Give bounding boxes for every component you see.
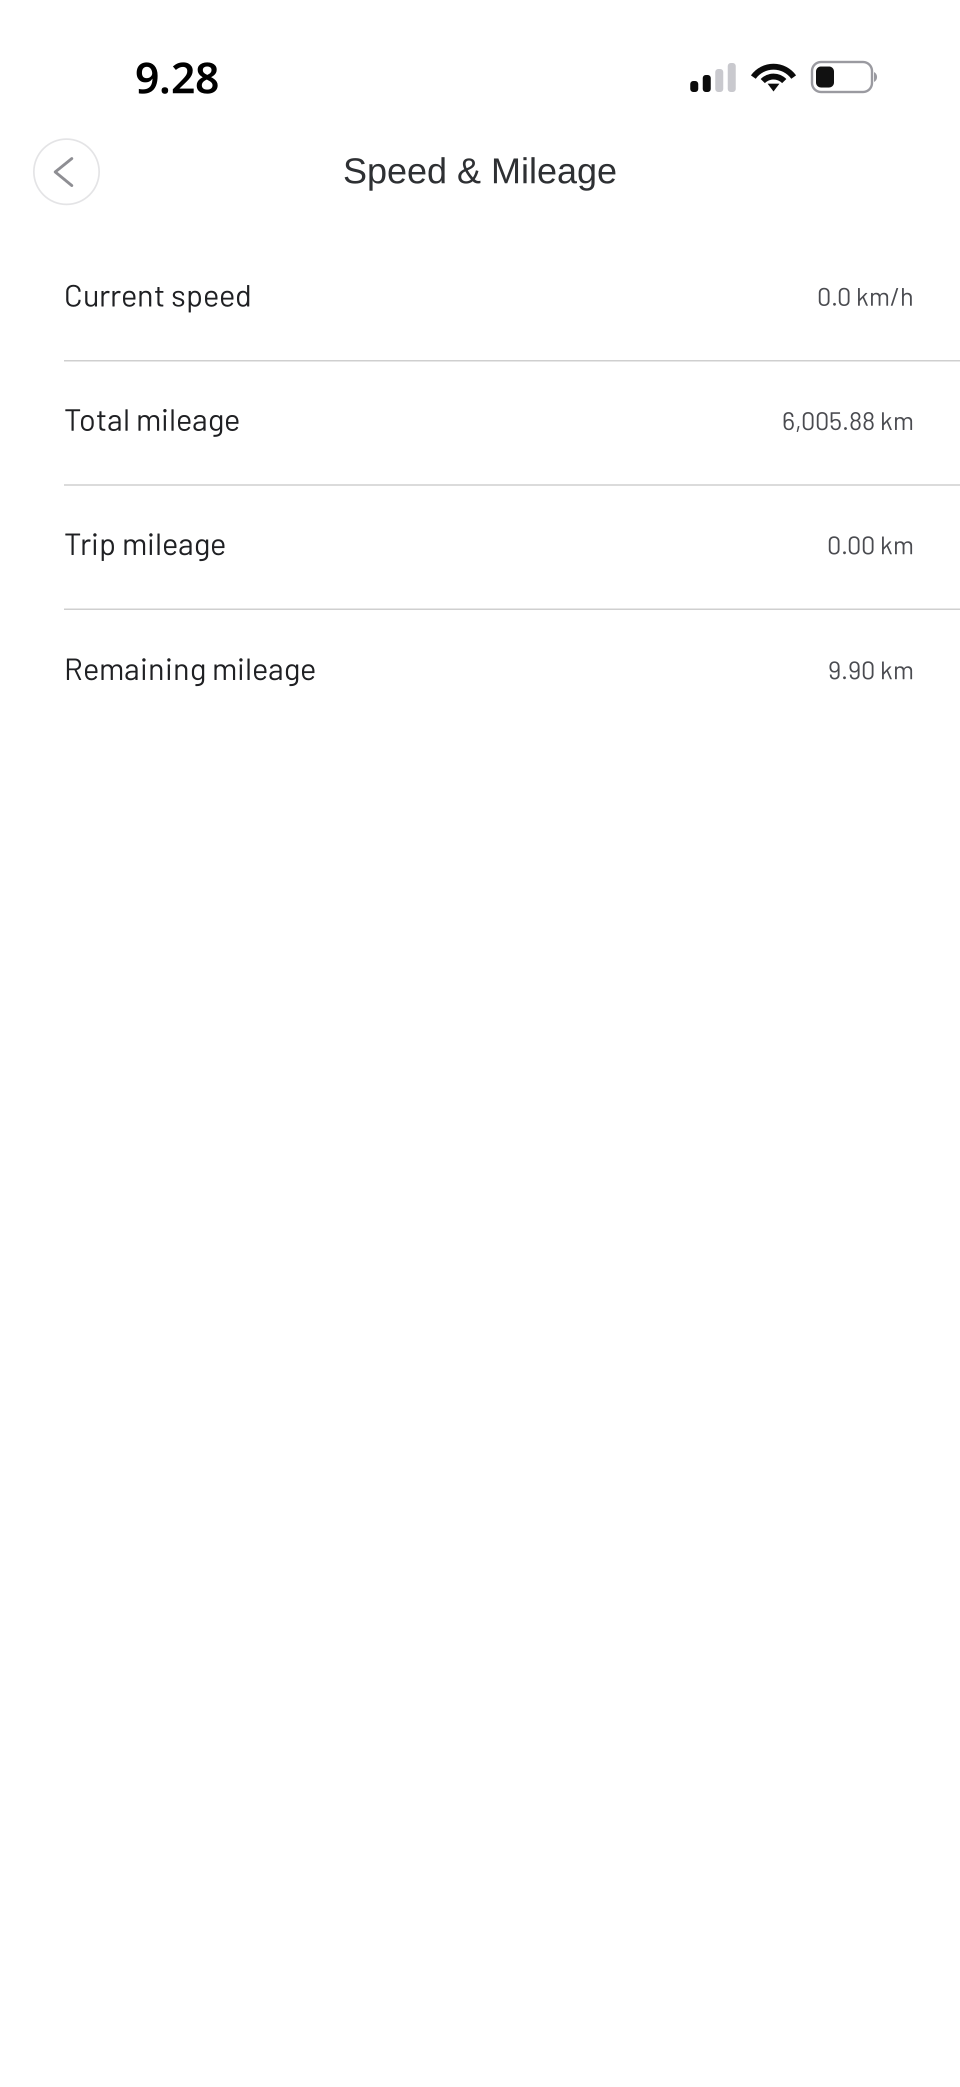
staticText: Trip mileage	[64, 524, 226, 561]
staticText: 6,005.88 km	[782, 405, 914, 435]
staticText: Speed & Mileage	[343, 151, 617, 191]
staticText: Remaining mileage	[64, 649, 316, 686]
staticText: 0.0 km/h	[817, 280, 914, 311]
staticText: Current speed	[64, 276, 252, 312]
staticText: 0.00 km	[827, 529, 914, 559]
staticText: 9.90 km	[828, 654, 914, 684]
staticText: Total mileage	[64, 400, 240, 437]
button[interactable]: Back	[33, 138, 100, 205]
staticText: 9.28	[135, 48, 219, 105]
